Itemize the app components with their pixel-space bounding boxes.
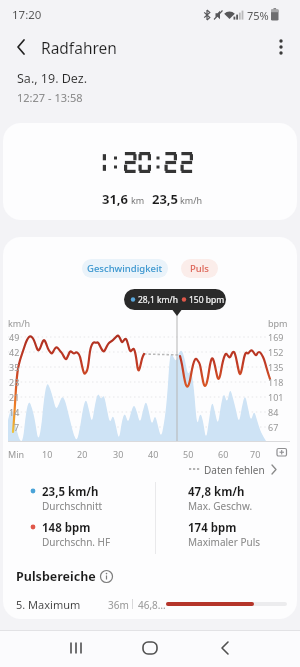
- staticText: 21: [9, 391, 20, 403]
- staticText: 47,8 km/h: [188, 484, 245, 500]
- staticText: 150 bpm: [189, 294, 225, 306]
- button[interactable]: [6, 32, 36, 62]
- staticText: 84: [268, 406, 279, 418]
- staticText: 40: [148, 448, 159, 460]
- staticText: 14: [9, 406, 20, 418]
- staticText: Radfahren: [41, 37, 117, 58]
- staticText: 148 bpm: [42, 520, 91, 536]
- staticText: 20: [77, 448, 88, 460]
- staticText: Puls: [190, 262, 209, 275]
- staticText: 28,1 km/h: [138, 294, 178, 306]
- staticText: 101: [268, 391, 284, 403]
- staticText: km/h: [180, 194, 203, 206]
- staticText: 5. Maximum: [16, 597, 81, 612]
- button[interactable]: [58, 633, 92, 663]
- staticText: 60: [218, 448, 229, 460]
- staticText: Durchschnitt: [42, 499, 103, 513]
- staticText: 42: [9, 346, 20, 358]
- button[interactable]: [99, 569, 114, 584]
- staticText: 23,5: [152, 190, 179, 208]
- staticText: 152: [268, 346, 284, 358]
- staticText: Min: [8, 448, 25, 460]
- staticText: 49: [9, 331, 20, 343]
- button[interactable]: Geschwindigkeit: [82, 259, 168, 278]
- staticText: Maximaler Puls: [188, 535, 261, 549]
- staticText: 174 bpm: [188, 520, 237, 536]
- staticText: Pulsbereiche: [16, 568, 96, 585]
- staticText: 46,8…: [138, 598, 166, 612]
- staticText: 17:20: [12, 7, 42, 23]
- staticText: 12:27 - 13:58: [17, 90, 83, 105]
- staticText: 75%: [247, 8, 269, 23]
- staticText: 7: [14, 421, 20, 433]
- staticText: km: [131, 194, 145, 206]
- staticText: km/h: [8, 317, 31, 329]
- staticText: 169: [268, 331, 284, 343]
- staticText: 50: [183, 448, 194, 460]
- button[interactable]: Puls: [181, 259, 218, 278]
- staticText: 67: [268, 421, 279, 433]
- staticText: 10: [42, 448, 53, 460]
- staticText: 36m: [108, 598, 129, 612]
- staticText: bpm: [268, 317, 288, 329]
- button[interactable]: [185, 462, 285, 476]
- button[interactable]: [10, 594, 290, 614]
- staticText: Daten fehlen: [204, 463, 265, 477]
- staticText: Max. Geschw.: [188, 499, 253, 513]
- staticText: 28: [9, 376, 20, 388]
- button[interactable]: [133, 633, 167, 663]
- staticText: 31,6: [102, 190, 129, 208]
- staticText: Sa., 19. Dez.: [17, 70, 88, 87]
- button[interactable]: [208, 633, 242, 663]
- staticText: 30: [113, 448, 124, 460]
- staticText: Durchschn. HF: [42, 535, 111, 549]
- staticText: 35: [9, 361, 20, 373]
- staticText: 118: [268, 376, 284, 388]
- staticText: 135: [268, 361, 284, 373]
- button[interactable]: [268, 32, 296, 62]
- staticText: 23,5 km/h: [42, 484, 99, 500]
- staticText: Geschwindigkeit: [87, 262, 163, 275]
- staticText: 70: [250, 448, 261, 460]
